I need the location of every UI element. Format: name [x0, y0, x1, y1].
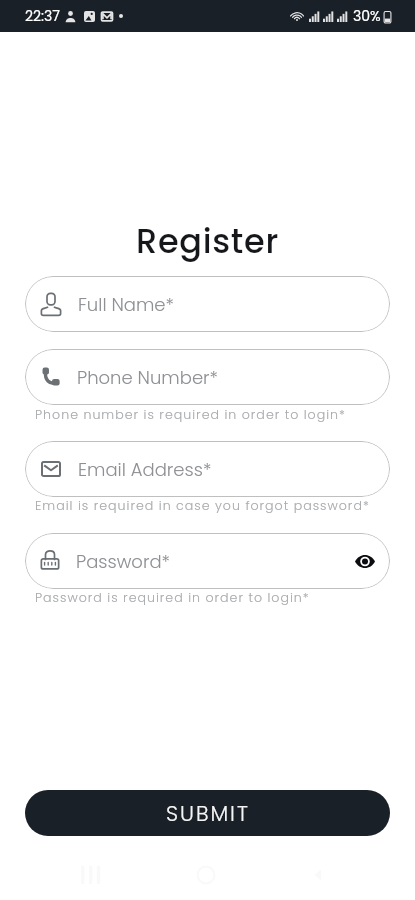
staticText: Email is required in case you forgot pas… — [35, 497, 370, 515]
button[interactable]: Email Address* — [25, 441, 390, 497]
button[interactable]: SUBMIT — [25, 790, 390, 836]
button[interactable]: Password* — [25, 533, 390, 589]
button[interactable]: Show password — [353, 551, 377, 571]
staticText: SUBMIT — [166, 799, 250, 828]
staticText: Password* — [76, 549, 170, 574]
button[interactable]: Phone Number* — [25, 349, 390, 405]
staticText: 22:37 — [25, 6, 60, 26]
staticText: Password is required in order to login* — [35, 589, 310, 607]
staticText: Full Name* — [78, 292, 174, 317]
staticText: Email Address* — [78, 457, 212, 482]
staticText: Phone number is required in order to log… — [35, 406, 346, 424]
button[interactable]: Full Name* — [25, 276, 390, 332]
staticText: 30% — [353, 6, 381, 26]
staticText: Register — [0, 218, 415, 265]
staticText: Phone Number* — [77, 365, 219, 390]
